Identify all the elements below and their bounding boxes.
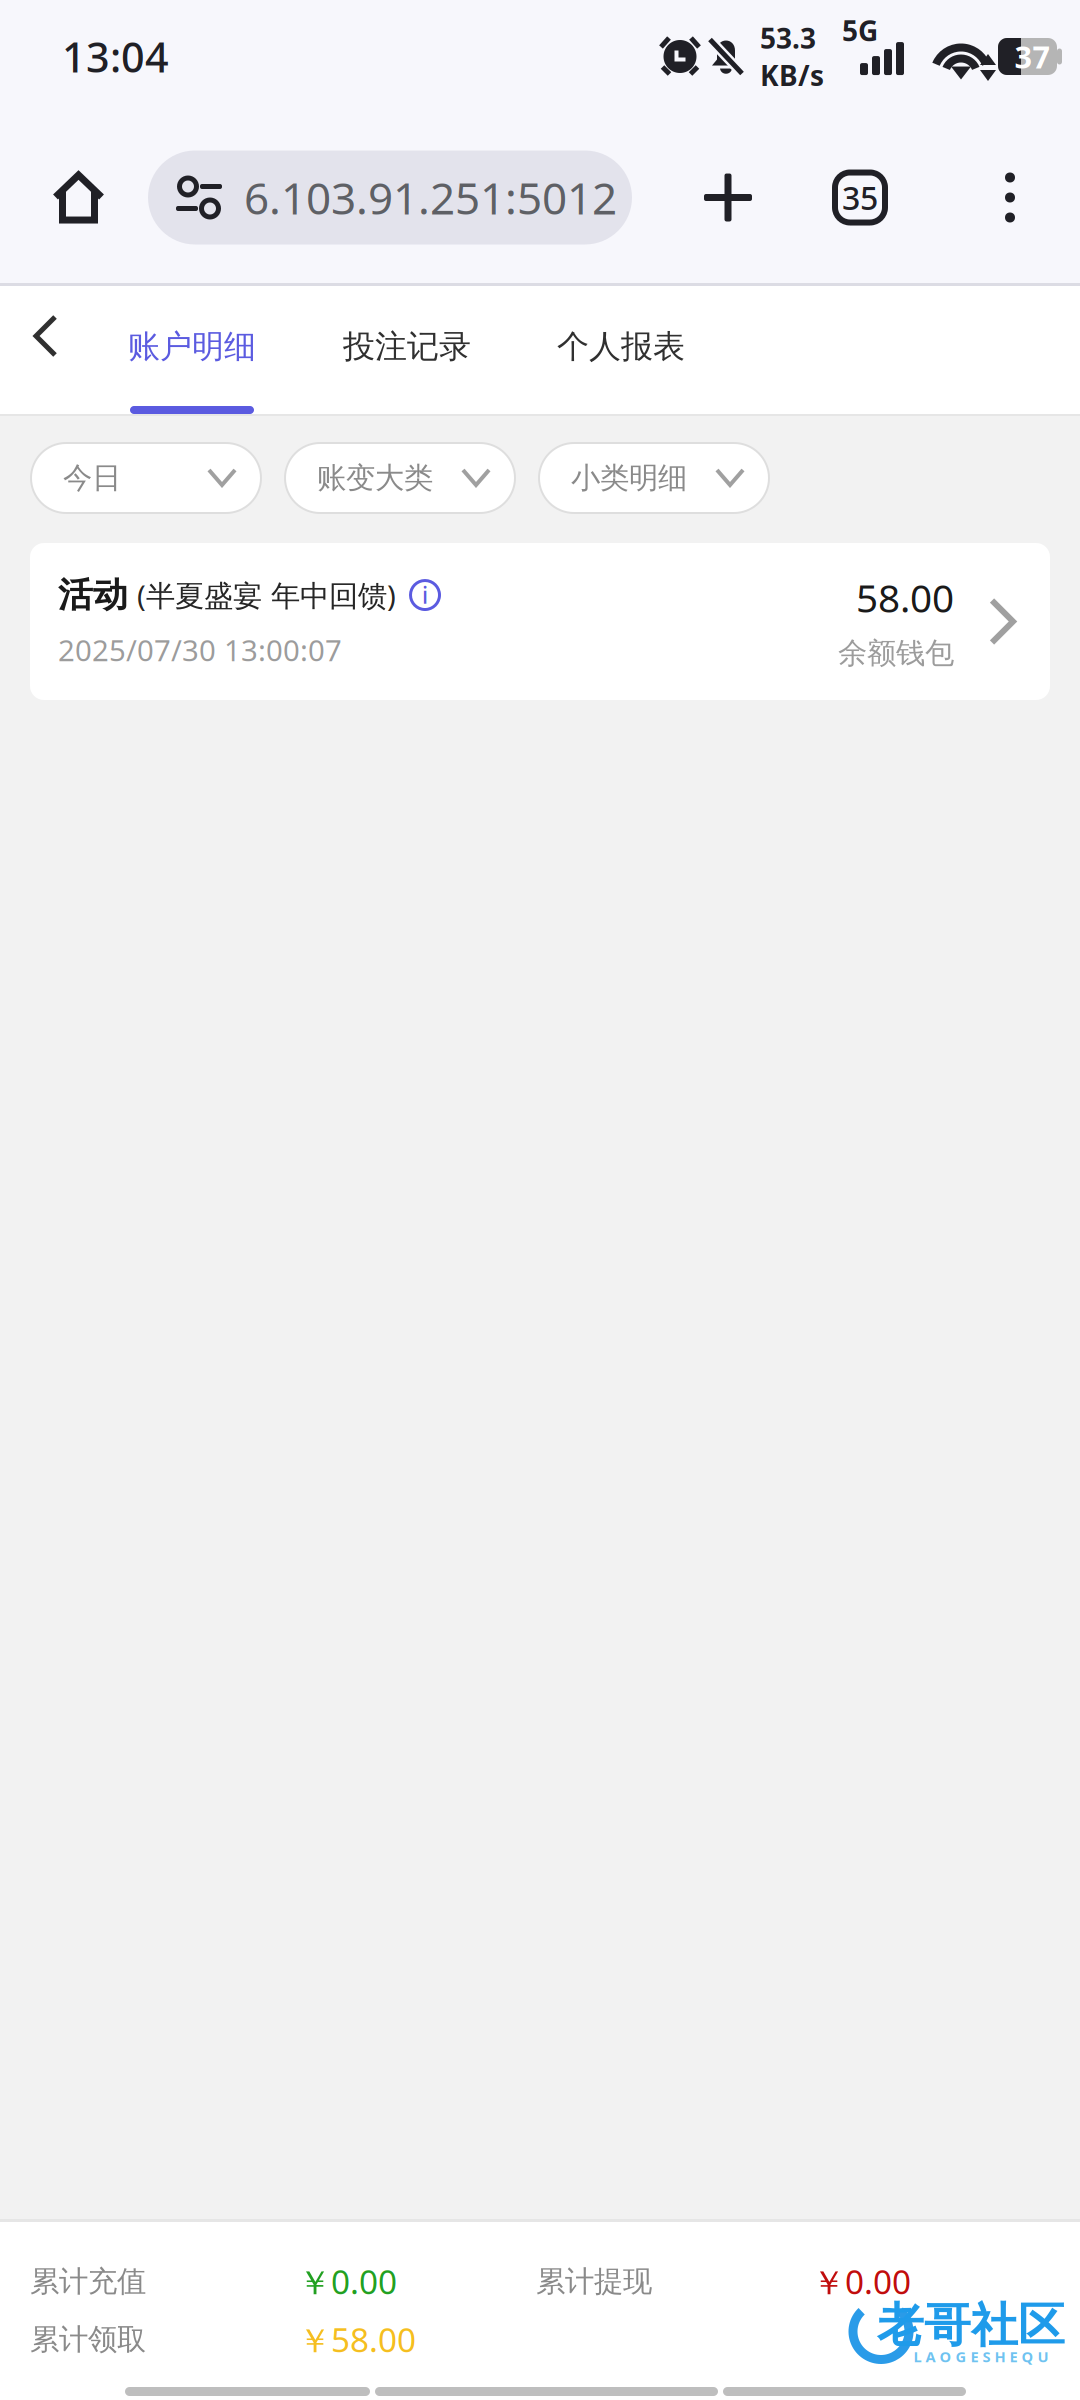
button[interactable]: 投注记录	[343, 286, 471, 406]
staticText: 余额钱包	[838, 635, 954, 671]
staticText: 账变大类	[317, 460, 433, 496]
staticText: ￥58.00	[298, 2317, 416, 2362]
staticText: i	[422, 580, 428, 610]
staticText: ￥0.00	[812, 2259, 911, 2304]
staticText: 2025/07/30 13:00:07	[58, 630, 342, 669]
staticText: 58.00	[856, 572, 954, 623]
staticText: KB/s	[760, 56, 824, 94]
staticText: ￥0.00	[298, 2259, 397, 2304]
staticText: 6.103.91.251:5012	[244, 168, 617, 227]
button[interactable]: New tab	[668, 139, 788, 255]
staticText: 累计充值	[30, 2263, 146, 2299]
staticText: 投注记录	[343, 327, 471, 366]
staticText: 老哥社区	[877, 2297, 1065, 2354]
button[interactable]: Address bar	[148, 150, 632, 244]
button[interactable]: Tabs	[808, 139, 912, 255]
staticText: 活动	[58, 574, 128, 616]
button[interactable]: 账户明细	[130, 286, 254, 414]
button[interactable]: 今日	[31, 443, 261, 513]
staticText: (半夏盛宴 年中回馈)	[137, 575, 396, 614]
button[interactable]: 个人报表	[559, 286, 683, 406]
staticText: 今日	[63, 460, 121, 496]
staticText: 累计领取	[30, 2321, 146, 2357]
button[interactable]: Home	[9, 139, 148, 255]
staticText: 小类明细	[571, 460, 687, 496]
staticText: 13:04	[62, 29, 169, 84]
staticText: L A O G E S H E Q U	[913, 2347, 1048, 2366]
staticText: 账户明细	[128, 327, 256, 366]
button[interactable]: More options	[974, 139, 1046, 255]
staticText: 5G	[842, 12, 878, 49]
button[interactable]: 小类明细	[539, 443, 769, 513]
staticText: 53.3	[760, 19, 816, 56]
staticText: 个人报表	[557, 327, 685, 366]
staticText: 35	[842, 176, 878, 219]
button[interactable]: 活动	[30, 543, 1050, 700]
button[interactable]: 账变大类	[285, 443, 515, 513]
staticText: 累计提现	[536, 2263, 652, 2299]
staticText: 37	[1014, 36, 1050, 77]
button[interactable]: Back	[0, 286, 90, 386]
